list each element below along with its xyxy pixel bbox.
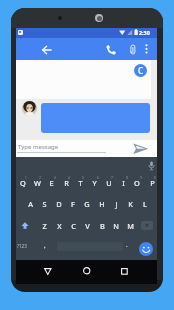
- staticText: Y: [92, 178, 97, 188]
- staticText: M: [127, 221, 134, 231]
- button[interactable]: T: [73, 176, 87, 190]
- button[interactable]: Z: [37, 219, 51, 233]
- staticText: K: [128, 199, 133, 209]
- staticText: B: [100, 221, 105, 231]
- staticText: 7: [111, 176, 113, 180]
- staticText: E: [49, 178, 54, 188]
- button[interactable]: [121, 268, 128, 275]
- staticText: H: [99, 199, 105, 209]
- staticText: O: [134, 178, 140, 188]
- staticText: P: [150, 178, 155, 188]
- staticText: A: [28, 199, 33, 209]
- button[interactable]: [134, 144, 147, 154]
- button[interactable]: [41, 103, 150, 133]
- staticText: 6: [97, 176, 99, 180]
- button[interactable]: W: [30, 176, 44, 190]
- button[interactable]: B: [95, 219, 109, 233]
- button[interactable]: Q: [16, 176, 30, 190]
- staticText: W: [34, 178, 41, 188]
- staticText: L: [143, 199, 147, 209]
- staticText: T: [78, 178, 83, 188]
- button[interactable]: [16, 140, 157, 157]
- button[interactable]: J: [109, 197, 123, 211]
- button[interactable]: E: [44, 176, 58, 190]
- button[interactable]: V: [80, 219, 94, 233]
- staticText: 2:30: [139, 29, 150, 36]
- staticText: 8: [126, 176, 128, 180]
- staticText: X: [57, 221, 62, 231]
- staticText: 2: [39, 176, 41, 180]
- staticText: S: [42, 199, 47, 209]
- button[interactable]: [16, 60, 151, 99]
- staticText: 5: [82, 176, 84, 180]
- staticText: R: [64, 178, 69, 188]
- button[interactable]: F: [66, 197, 80, 211]
- button[interactable]: N: [109, 219, 123, 233]
- staticText: 1: [25, 176, 27, 180]
- staticText: C: [138, 65, 144, 76]
- button[interactable]: U: [102, 176, 116, 190]
- staticText: Type message: [18, 143, 59, 151]
- staticText: J: [115, 199, 118, 209]
- button[interactable]: [139, 242, 153, 256]
- staticText: Z: [42, 221, 47, 231]
- staticText: G: [84, 199, 90, 209]
- button[interactable]: [83, 267, 90, 274]
- staticText: D: [56, 199, 62, 209]
- staticText: ,: [44, 242, 46, 250]
- staticText: ?123: [17, 243, 27, 249]
- button[interactable]: [44, 268, 52, 275]
- button[interactable]: P: [145, 176, 159, 190]
- staticText: .: [126, 241, 128, 249]
- staticText: 0: [154, 176, 156, 180]
- button[interactable]: A: [23, 197, 37, 211]
- staticText: Q: [20, 178, 26, 188]
- button[interactable]: Y: [87, 176, 101, 190]
- button[interactable]: C: [134, 64, 147, 77]
- staticText: 4: [68, 176, 70, 180]
- button[interactable]: O: [130, 176, 144, 190]
- button[interactable]: G: [80, 197, 94, 211]
- button[interactable]: X: [52, 219, 66, 233]
- button[interactable]: [141, 221, 153, 230]
- staticText: V: [85, 221, 90, 231]
- button[interactable]: S: [37, 197, 51, 211]
- staticText: I: [122, 178, 125, 188]
- button[interactable]: [16, 38, 157, 61]
- staticText: U: [106, 178, 112, 188]
- staticText: 9: [140, 176, 142, 180]
- button[interactable]: H: [95, 197, 109, 211]
- button[interactable]: K: [123, 197, 137, 211]
- button[interactable]: R: [59, 176, 73, 190]
- staticText: C: [71, 221, 76, 231]
- staticText: F: [71, 199, 75, 209]
- button[interactable]: M: [123, 219, 137, 233]
- staticText: 3: [54, 176, 56, 180]
- button[interactable]: D: [52, 197, 66, 211]
- button[interactable]: L: [138, 197, 152, 211]
- button[interactable]: [148, 161, 155, 171]
- button[interactable]: C: [66, 219, 80, 233]
- staticText: N: [113, 221, 119, 231]
- button[interactable]: I: [116, 176, 130, 190]
- button[interactable]: [21, 222, 29, 229]
